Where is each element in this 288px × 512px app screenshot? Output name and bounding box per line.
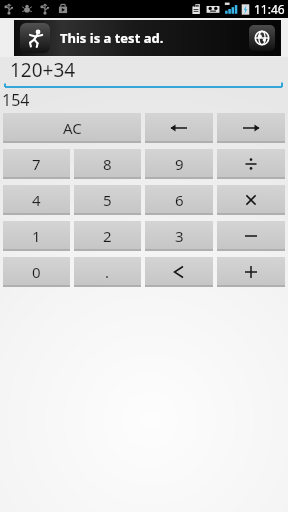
button[interactable]: 0 xyxy=(3,257,70,287)
button[interactable]: 1 xyxy=(3,221,70,251)
button[interactable]: Subtract xyxy=(217,221,285,251)
staticText: 8 xyxy=(103,154,112,174)
staticText: 154 xyxy=(2,89,30,107)
button[interactable]: 120+34 xyxy=(0,57,288,83)
staticText: This is a test ad. xyxy=(60,29,164,47)
staticText: 120+34 xyxy=(10,57,76,83)
button[interactable]: 8 xyxy=(74,149,141,179)
button[interactable]: Add xyxy=(217,257,285,287)
button[interactable]: Cursor left xyxy=(145,113,213,143)
staticText: . xyxy=(105,262,110,282)
button[interactable]: 7 xyxy=(3,149,70,179)
button[interactable]: 4 xyxy=(3,185,70,215)
staticText: 9 xyxy=(175,154,184,174)
button[interactable]: Cursor right xyxy=(217,113,285,143)
button[interactable]: Open advertiser website xyxy=(249,25,275,51)
staticText: 4 xyxy=(32,190,41,210)
button[interactable]: 6 xyxy=(145,185,213,215)
staticText: AC xyxy=(63,118,82,138)
button[interactable]: 9 xyxy=(145,149,213,179)
button[interactable]: 5 xyxy=(74,185,141,215)
staticText: 1 xyxy=(32,226,41,246)
button[interactable]: Less than xyxy=(145,257,213,287)
button[interactable]: This is a test ad. xyxy=(14,20,281,56)
button[interactable]: 2 xyxy=(74,221,141,251)
staticText: 2 xyxy=(103,226,112,246)
staticText: 6 xyxy=(175,190,184,210)
staticText: 11:46 xyxy=(254,1,285,17)
staticText: 0 xyxy=(32,262,41,282)
button[interactable]: . xyxy=(74,257,141,287)
staticText: 3 xyxy=(175,226,184,246)
staticText: 7 xyxy=(32,154,41,174)
button[interactable]: 3 xyxy=(145,221,213,251)
button[interactable]: AC xyxy=(3,113,141,143)
button[interactable]: Multiply xyxy=(217,185,285,215)
staticText: 5 xyxy=(103,190,112,210)
button[interactable]: Divide xyxy=(217,149,285,179)
